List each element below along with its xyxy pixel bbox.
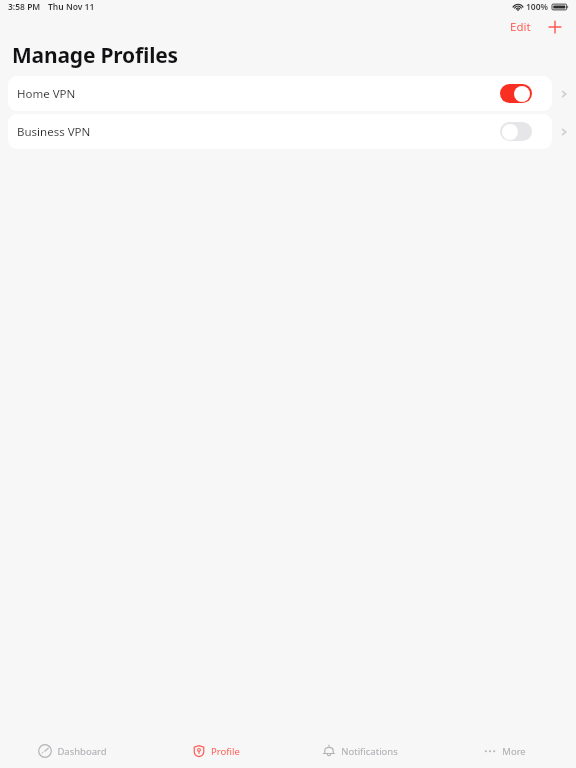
staticText: Notifications bbox=[341, 745, 398, 758]
button[interactable]: Open Business VPN details bbox=[552, 114, 576, 149]
button[interactable]: Edit bbox=[505, 16, 536, 38]
button[interactable]: Home VPN bbox=[0, 76, 576, 111]
button[interactable]: More bbox=[432, 734, 576, 768]
staticText: Business VPN bbox=[17, 124, 500, 140]
staticText: Edit bbox=[510, 19, 531, 35]
staticText: 3:58 PM bbox=[8, 1, 41, 13]
button[interactable]: Notifications bbox=[288, 734, 432, 768]
staticText: Home VPN bbox=[17, 86, 500, 102]
staticText: More bbox=[502, 745, 526, 758]
button[interactable]: Business VPN disabled bbox=[500, 122, 532, 141]
staticText: Profile bbox=[211, 745, 240, 758]
button[interactable]: Profile bbox=[144, 734, 288, 768]
button[interactable]: Dashboard bbox=[0, 734, 144, 768]
staticText: Dashboard bbox=[57, 745, 107, 758]
button[interactable]: Business VPN bbox=[0, 114, 576, 149]
button[interactable]: Add profile bbox=[544, 16, 566, 38]
staticText: Thu Nov 11 bbox=[48, 1, 95, 13]
button[interactable]: Open Home VPN details bbox=[552, 76, 576, 111]
staticText: 100% bbox=[526, 1, 549, 13]
staticText: Manage Profiles bbox=[12, 41, 178, 70]
button[interactable]: Home VPN enabled bbox=[500, 84, 532, 103]
